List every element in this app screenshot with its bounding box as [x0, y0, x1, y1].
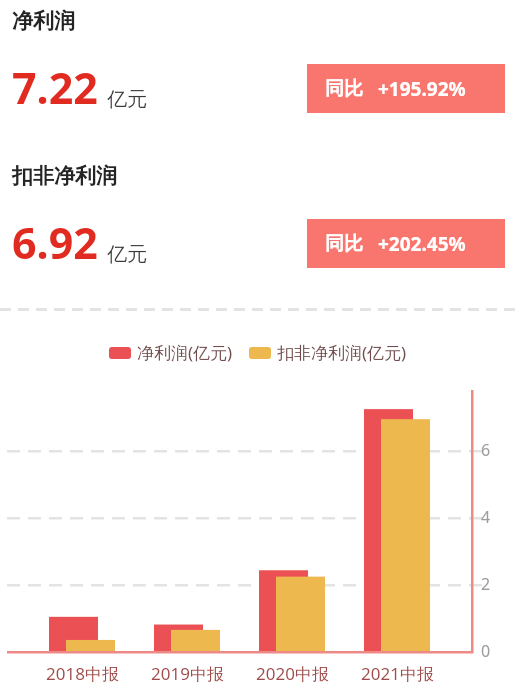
staticText: +195.92%: [378, 76, 466, 102]
staticText: 扣非净利润: [12, 163, 117, 189]
button[interactable]: 净利润(亿元): [109, 341, 233, 364]
staticText: 净利润(亿元): [137, 341, 233, 364]
staticText: 2018中报: [46, 662, 119, 685]
button[interactable]: 同比: [307, 219, 505, 268]
button[interactable]: 同比: [307, 64, 505, 113]
staticText: 2019中报: [151, 662, 224, 685]
staticText: 同比: [325, 232, 363, 256]
staticText: 2: [481, 573, 491, 595]
staticText: 净利润: [12, 8, 75, 34]
staticText: +202.45%: [378, 231, 466, 257]
staticText: 4: [481, 506, 491, 528]
staticText: 6: [481, 439, 491, 461]
staticText: 2020中报: [256, 662, 329, 685]
staticText: 0: [481, 640, 491, 662]
staticText: 6.92: [12, 213, 98, 272]
staticText: 亿元: [107, 87, 147, 112]
staticText: 2021中报: [361, 662, 434, 685]
button[interactable]: 扣非净利润(亿元): [249, 341, 407, 364]
staticText: 亿元: [107, 242, 147, 267]
staticText: 7.22: [12, 58, 98, 117]
staticText: 同比: [325, 77, 363, 101]
staticText: 扣非净利润(亿元): [277, 341, 407, 364]
